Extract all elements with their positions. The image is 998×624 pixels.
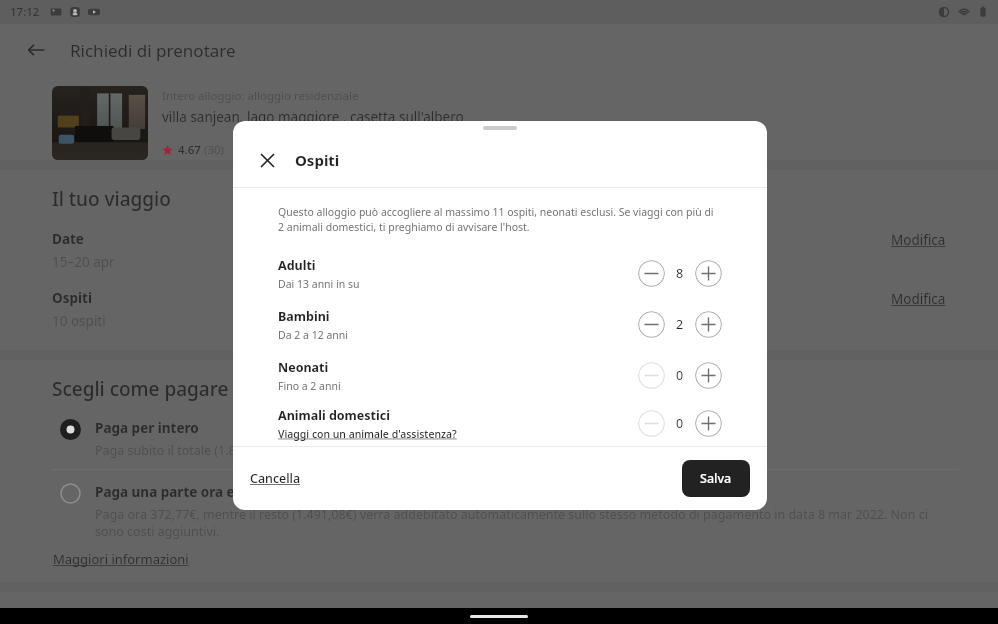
button[interactable]: Riduci Animali domestici	[638, 410, 665, 437]
staticText: Paga subito il totale (1.863,85€).	[95, 442, 282, 459]
staticText: Il tuo viaggio	[52, 186, 171, 212]
staticText: Animali domestici	[278, 407, 390, 424]
staticText: Paga per intero	[95, 419, 199, 437]
button[interactable]: Cancella	[248, 467, 303, 490]
staticText: 10 ospiti	[52, 312, 106, 330]
button[interactable]: Aumenta Bambini	[695, 311, 722, 338]
staticText: Viaggi con un animale d'assistenza?	[278, 427, 457, 441]
staticText: Ospiti	[295, 150, 340, 170]
button[interactable]: Modifica	[889, 230, 948, 250]
button[interactable]: Riduci Bambini	[638, 311, 665, 338]
staticText: Da 2 a 12 anni	[278, 328, 348, 342]
staticText: Cancella	[250, 470, 301, 487]
staticText: (30)	[204, 142, 225, 158]
staticText: Adulti	[278, 257, 316, 274]
button[interactable]: Indietro	[16, 30, 56, 70]
staticText: 8	[676, 265, 684, 282]
staticText: Scegli come pagare	[52, 376, 229, 402]
button[interactable]: Paga una parte ora e una parte dopo	[52, 482, 958, 540]
button[interactable]: Aumenta Animali domestici	[695, 410, 722, 437]
button[interactable]: Salva	[682, 460, 750, 497]
staticText: 4.67	[178, 142, 201, 158]
staticText: 15–20 apr	[52, 253, 115, 271]
staticText: Modifica	[891, 290, 946, 308]
button[interactable]: Riduci Neonati	[638, 362, 665, 389]
staticText: 2	[676, 316, 684, 333]
staticText: Maggiori informazioni	[53, 550, 189, 568]
staticText: Date	[52, 230, 84, 248]
staticText: Paga una parte ora e una parte dopo	[95, 483, 342, 501]
staticText: Neonati	[278, 359, 329, 376]
staticText: Bambini	[278, 308, 330, 325]
button[interactable]: Modifica	[889, 289, 948, 309]
staticText: Questo alloggio può accogliere al massim…	[278, 205, 722, 234]
button[interactable]: Chiudi	[250, 143, 284, 177]
button[interactable]: Chiudi finestra	[0, 0, 998, 624]
staticText: Dettagli del prezzo	[52, 606, 202, 624]
staticText: Intero alloggio: alloggio residenziale	[162, 88, 359, 104]
staticText: Modifica	[891, 231, 946, 249]
staticText: 0	[676, 367, 684, 384]
button[interactable]: Maggiori informazioni	[52, 550, 190, 568]
staticText: Richiedi di prenotare	[70, 39, 236, 62]
staticText: Paga ora 372,77€, mentre il resto (1.491…	[95, 506, 958, 540]
button[interactable]: Viaggi con un animale d'assistenza?	[278, 427, 457, 441]
staticText: Salva	[700, 470, 732, 487]
staticText: 17:12	[10, 4, 40, 20]
button[interactable]: Aumenta Neonati	[695, 362, 722, 389]
button[interactable]: Paga per intero	[52, 418, 958, 459]
staticText: 0	[676, 415, 684, 432]
staticText: Dai 13 anni in su	[278, 277, 360, 291]
button[interactable]: Aumenta Adulti	[695, 260, 722, 287]
staticText: villa sanjean, lago maggiore , casetta s…	[162, 108, 464, 126]
staticText: Fino a 2 anni	[278, 379, 341, 393]
button[interactable]: Riduci Adulti	[638, 260, 665, 287]
staticText: Ospiti	[52, 289, 92, 307]
